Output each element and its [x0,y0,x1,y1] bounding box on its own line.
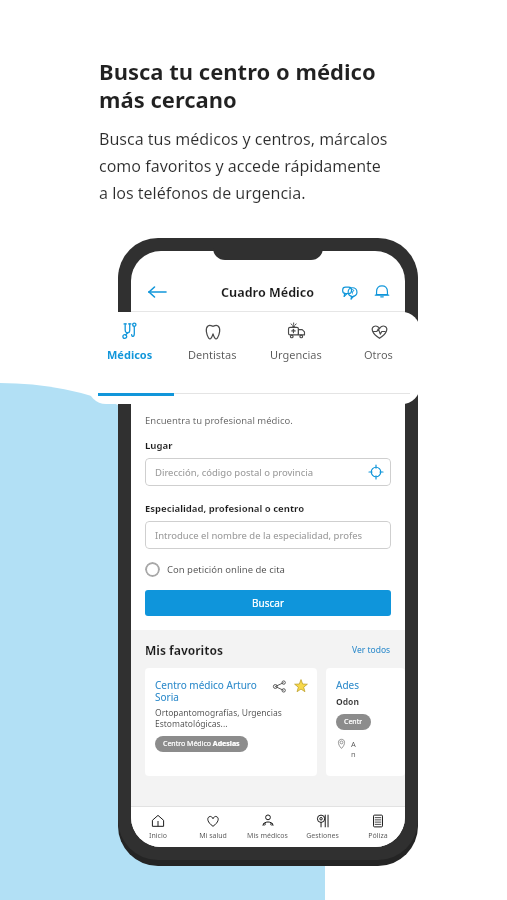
staticText: Introduce el nombre de la especialidad, … [155,529,363,542]
button[interactable]: Con petición online de cita [145,562,285,577]
staticText: Inicio [149,831,167,841]
staticText: Odon [336,696,359,708]
staticText: Dentistas [188,347,237,362]
button[interactable]: Médicos [88,320,171,393]
button[interactable]: Introduce el nombre de la especialidad, … [145,521,391,549]
staticText: Encuentra tu profesional médico. [145,414,293,427]
staticText: Centr [344,717,363,727]
button[interactable]: Dirección, código postal o provincia [145,458,391,486]
button[interactable]: Share [271,678,287,694]
staticText: Busca tus médicos y centros, márcalos co… [99,128,388,204]
button[interactable]: Póliza [350,807,405,847]
button[interactable]: Dentistas [171,320,254,393]
button[interactable]: Mi salud [185,807,240,847]
button[interactable]: Notifications [369,279,395,305]
button[interactable]: Chat support [337,279,363,305]
button[interactable]: Centro médico Arturo Soria [145,668,317,776]
staticText: Cuadro Médico [221,284,315,301]
staticText: Centro médico Arturo Soria [155,678,271,704]
button[interactable]: Otros [337,320,420,393]
staticText: Mi salud [199,831,227,841]
button[interactable]: Ades [326,668,405,776]
staticText: Urgencias [270,347,322,362]
staticText: Ver todos [352,644,391,656]
button[interactable]: Gestiones [295,807,350,847]
button[interactable]: Favorite [293,678,309,694]
staticText: Buscar [252,596,285,610]
button[interactable]: Inicio [131,807,185,847]
staticText: Centro Médico Adeslas [163,739,240,749]
staticText: Gestiones [306,831,339,841]
staticText: n [351,749,356,759]
button[interactable]: Mis médicos [240,807,295,847]
staticText: Otros [364,347,393,362]
button[interactable]: Back [143,278,171,306]
staticText: A [351,739,356,749]
staticText: Mis favoritos [145,642,223,658]
button[interactable]: Buscar [145,590,391,616]
staticText: Lugar [145,439,173,452]
staticText: Dirección, código postal o provincia [155,466,314,479]
staticText: Ortopantomografías, Urgencias Estomatoló… [155,707,282,729]
button[interactable]: Urgencias [254,320,337,393]
staticText: Mis médicos [247,831,288,841]
staticText: Póliza [368,831,388,841]
staticText: Médicos [107,347,153,362]
staticText: Con petición online de cita [167,563,285,576]
staticText: Especialidad, profesional o centro [145,502,305,515]
staticText: Ades [336,678,359,692]
button[interactable]: Ver todos [352,644,391,656]
staticText: Busca tu centro o médico más cercano [99,56,376,114]
